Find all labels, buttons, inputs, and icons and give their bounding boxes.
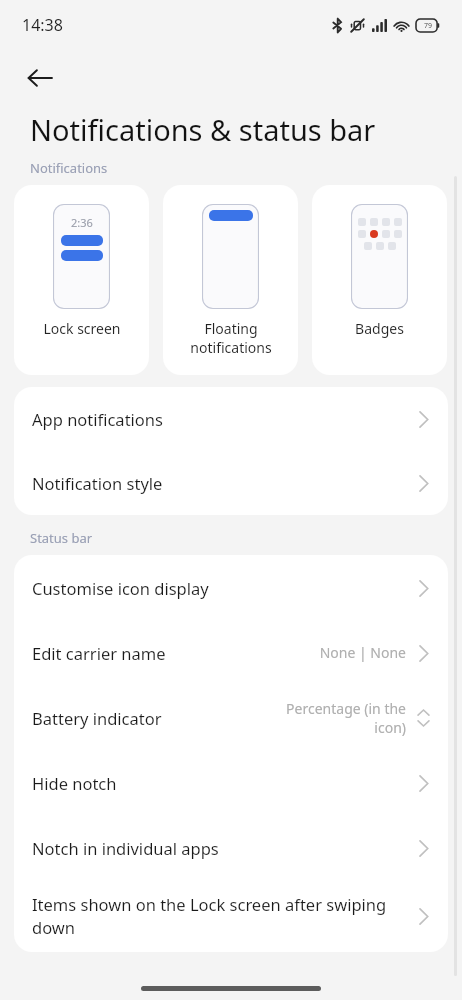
staticText: Floating notifications xyxy=(190,319,272,357)
staticText: Notification style xyxy=(32,472,163,494)
button[interactable]: 2:36 xyxy=(14,185,149,375)
button[interactable]: Badges xyxy=(312,185,447,375)
button[interactable]: App notifications xyxy=(14,387,448,451)
staticText: Battery indicator xyxy=(32,707,162,729)
staticText: App notifications xyxy=(32,408,163,430)
button[interactable]: Edit carrier name xyxy=(14,620,448,685)
staticText: Hide notch xyxy=(32,772,117,794)
staticText: 79 xyxy=(424,21,433,31)
staticText: Items shown on the Lock screen after swi… xyxy=(32,893,412,939)
button[interactable]: Battery indicator xyxy=(14,685,448,750)
staticText: Notch in individual apps xyxy=(32,837,219,859)
staticText: Notifications xyxy=(30,159,108,177)
staticText: None | None xyxy=(319,643,406,662)
button[interactable]: Items shown on the Lock screen after swi… xyxy=(14,880,448,952)
button[interactable]: Hide notch xyxy=(14,750,448,815)
button[interactable]: Notification style xyxy=(14,451,448,515)
staticText: Badges xyxy=(355,319,404,338)
button[interactable]: Floating notifications xyxy=(163,185,298,375)
button[interactable]: Notch in individual apps xyxy=(14,815,448,880)
staticText: Status bar xyxy=(30,529,93,547)
staticText: Customise icon display xyxy=(32,577,209,599)
staticText: Percentage (in the icon) xyxy=(286,699,406,737)
staticText: 2:36 xyxy=(71,215,93,230)
staticText: 14:38 xyxy=(22,14,63,36)
button[interactable]: Customise icon display xyxy=(14,555,448,620)
staticText: Notifications & status bar xyxy=(30,110,376,149)
staticText: Edit carrier name xyxy=(32,642,166,664)
button[interactable]: Back xyxy=(14,52,66,104)
staticText: Lock screen xyxy=(43,319,121,338)
